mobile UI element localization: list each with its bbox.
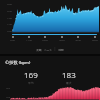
staticText: 11:40 bbox=[26, 39, 32, 42]
staticText: ペース bbox=[44, 48, 52, 51]
staticText: 1:30 bbox=[7, 23, 12, 26]
staticText: 187 bbox=[6, 87, 10, 90]
staticText: 183 bbox=[62, 69, 76, 80]
staticText: 心拍数 (bpm) bbox=[5, 60, 31, 66]
button[interactable]: 心拍数 (bpm) bbox=[0, 56, 100, 100]
staticText: 0:00 bbox=[7, 3, 12, 6]
button[interactable]: 183 bbox=[62, 69, 76, 85]
staticText: | bbox=[54, 47, 56, 51]
staticText: 距離 bbox=[36, 48, 42, 51]
staticText: 2:00 bbox=[7, 30, 12, 33]
staticText: 35:07 bbox=[59, 39, 65, 42]
button[interactable]: 169 bbox=[24, 69, 38, 85]
staticText: 58:20 bbox=[92, 39, 98, 42]
staticText: 23:20 bbox=[42, 39, 48, 42]
staticText: 最大 bbox=[66, 81, 72, 85]
staticText: 1:00 bbox=[7, 17, 12, 20]
staticText: 169 bbox=[24, 69, 38, 80]
staticText: 46:40 bbox=[75, 39, 81, 42]
button[interactable]: 0:00 bbox=[0, 0, 100, 54]
staticText: 100 bbox=[6, 96, 10, 99]
staticText: 時間 bbox=[58, 48, 64, 51]
staticText: 平均 bbox=[28, 81, 34, 85]
staticText: 0:30 bbox=[7, 10, 12, 13]
staticText: 0:00 bbox=[10, 39, 15, 42]
